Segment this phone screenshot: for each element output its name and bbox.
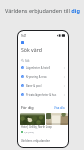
staticText: 9:41 <box>21 34 27 38</box>
staticText: Världens erbjudanden till dig <box>5 7 80 14</box>
button[interactable]: Privata lägenheter & hus <box>18 90 68 99</box>
staticText: Privata lägenheter & hus <box>26 93 57 97</box>
staticText: Sök värd <box>21 46 42 53</box>
staticText: För dig <box>21 105 34 110</box>
button[interactable]: Sök <box>21 58 68 63</box>
staticText: 4,8 (129) <box>24 130 34 133</box>
staticText: Visa alla <box>54 106 65 110</box>
button[interactable]: Lägenheter & hotell <box>18 63 68 72</box>
button[interactable]: Barer & pool <box>18 81 68 90</box>
staticText: Hotel, Grillby, North Loop <box>21 125 52 129</box>
button[interactable] <box>46 113 68 125</box>
button[interactable]: Kryssning & resa <box>18 72 68 81</box>
button[interactable] <box>20 113 45 125</box>
staticText: Lägenheter & hotell <box>26 66 51 70</box>
staticText: Barer & pool <box>26 84 42 88</box>
staticText: Sök <box>25 59 30 63</box>
staticText: Världens erbjudanden <box>21 139 51 143</box>
staticText: Kryssning & resa <box>26 75 47 79</box>
